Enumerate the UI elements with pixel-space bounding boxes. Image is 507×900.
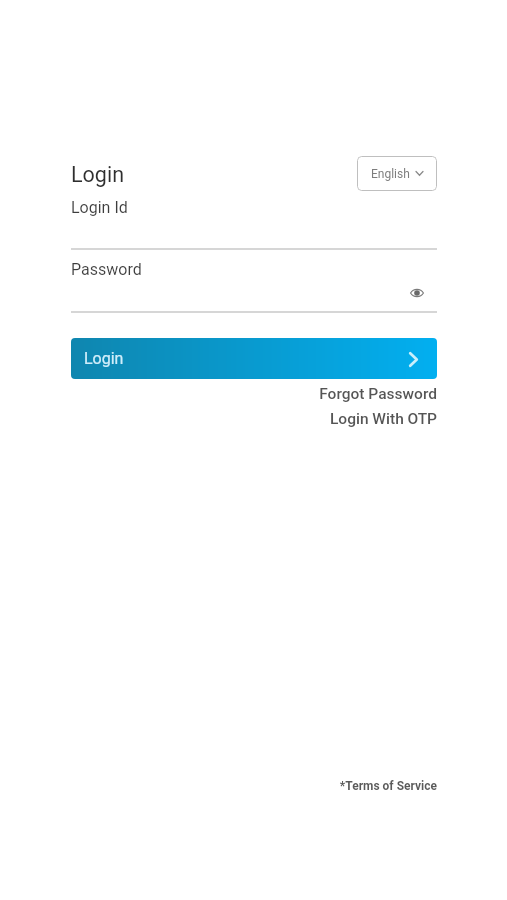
staticText: Login: [84, 349, 124, 368]
button[interactable]: Forgot Password: [71, 385, 437, 403]
button[interactable]: *Terms of Service: [71, 779, 437, 793]
staticText: English: [371, 167, 410, 181]
button[interactable]: Login With OTP: [71, 410, 437, 428]
staticText: Password: [71, 260, 142, 279]
staticText: Login Id: [71, 198, 128, 217]
staticText: Login: [71, 162, 125, 187]
button[interactable]: English: [357, 156, 437, 191]
button[interactable]: Show password: [404, 280, 430, 305]
button[interactable]: Login: [71, 338, 437, 379]
